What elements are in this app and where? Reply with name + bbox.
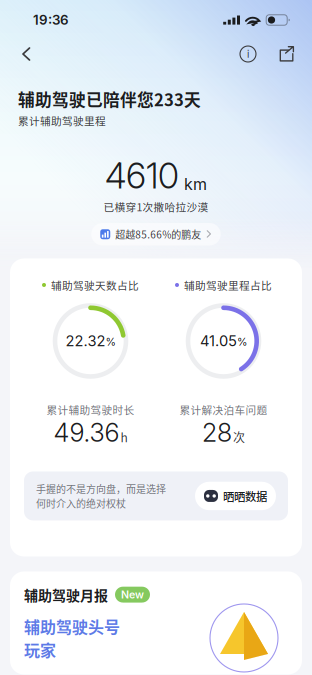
staticText: 辅助驾驶里程占比 [184,277,272,293]
staticText: New [121,588,144,601]
staticText: 累计辅助驾驶时长 [46,402,134,417]
staticText: 手握的不是方向盘，而是选择 何时介入的绝对权杖 [36,481,166,510]
staticText: km [184,175,207,194]
button[interactable]: Information [233,40,263,68]
staticText: 4610 [105,155,179,197]
staticText: 19:36 [33,12,69,28]
staticText: 41.05 [200,332,237,350]
staticText: 已横穿1次撒哈拉沙漠 [103,199,208,214]
staticText: 晒晒数据 [223,488,267,504]
staticText: 28 [202,417,232,448]
staticText: 累计解决泊车问题 [179,402,267,417]
staticText: 辅助驾驶已陪伴您233天 [18,87,201,111]
staticText: 累计辅助驾驶里程 [18,113,106,128]
staticText: 22.32 [65,332,105,350]
button[interactable]: 晒晒数据 [195,482,276,510]
staticText: 辅助驾驶天数占比 [51,277,139,293]
button[interactable]: Share [272,40,301,67]
button[interactable]: Back [11,40,42,68]
button[interactable]: 超越85.66%的鹏友 [91,223,221,245]
staticText: i [247,48,249,60]
staticText: 超越85.66%的鹏友 [115,227,201,241]
staticText: 辅助驾驶月报 [24,584,108,605]
staticText: 49.36 [53,417,119,448]
staticText: % [237,335,247,348]
staticText: % [105,335,115,348]
staticText: 次 [233,428,245,446]
staticText: h [120,428,127,446]
staticText: 辅助驾驶头号 玩家 [24,615,120,661]
